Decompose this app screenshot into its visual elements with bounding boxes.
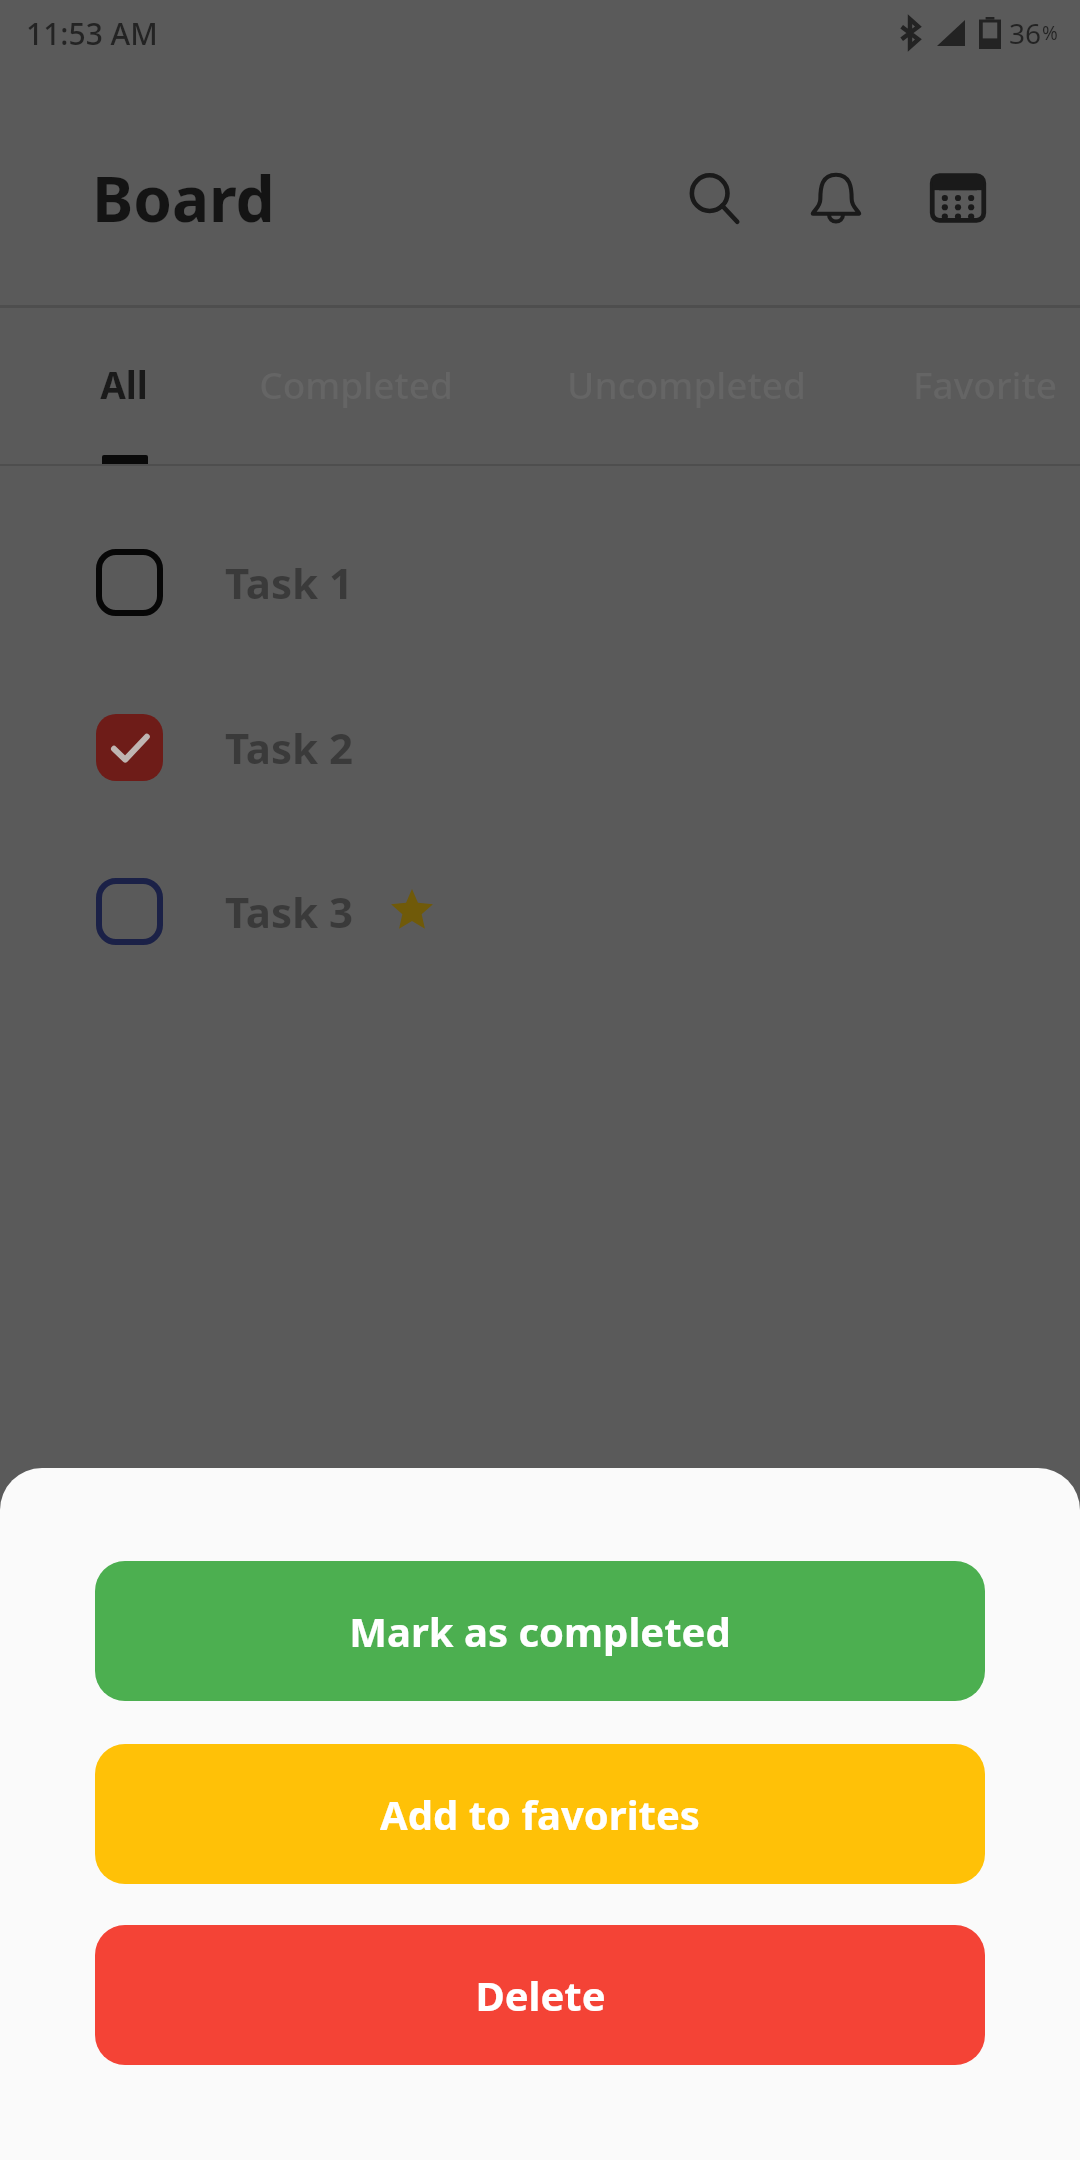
staticText: Board [92,156,275,240]
button[interactable]: All [59,310,189,458]
button[interactable]: Add to favorites [95,1744,985,1884]
staticText: All [100,359,148,409]
staticText: Task 2 [225,719,354,776]
staticText: 11:53 AM [26,13,158,54]
button[interactable]: Task 1 [0,502,1080,662]
staticText: Add to favorites [380,1787,700,1841]
button[interactable]: Search [666,150,762,246]
button[interactable]: Delete [95,1925,985,2065]
button[interactable]: Task 3 [0,831,1080,991]
staticText: Task 3 [225,883,354,940]
staticText: Favorite [913,359,1057,409]
staticText: % [1042,20,1058,46]
button[interactable]: Task 2 [0,667,1080,827]
staticText: 36 [1009,14,1042,52]
staticText: Mark as completed [349,1604,731,1658]
button[interactable]: Calendar [910,150,1006,246]
button[interactable]: Mark as completed [95,1561,985,1701]
staticText: Delete [475,1968,606,2022]
staticText: Completed [259,359,453,409]
staticText: Task 1 [225,554,354,611]
button[interactable]: Notifications [788,150,884,246]
staticText: Uncompleted [567,359,806,409]
